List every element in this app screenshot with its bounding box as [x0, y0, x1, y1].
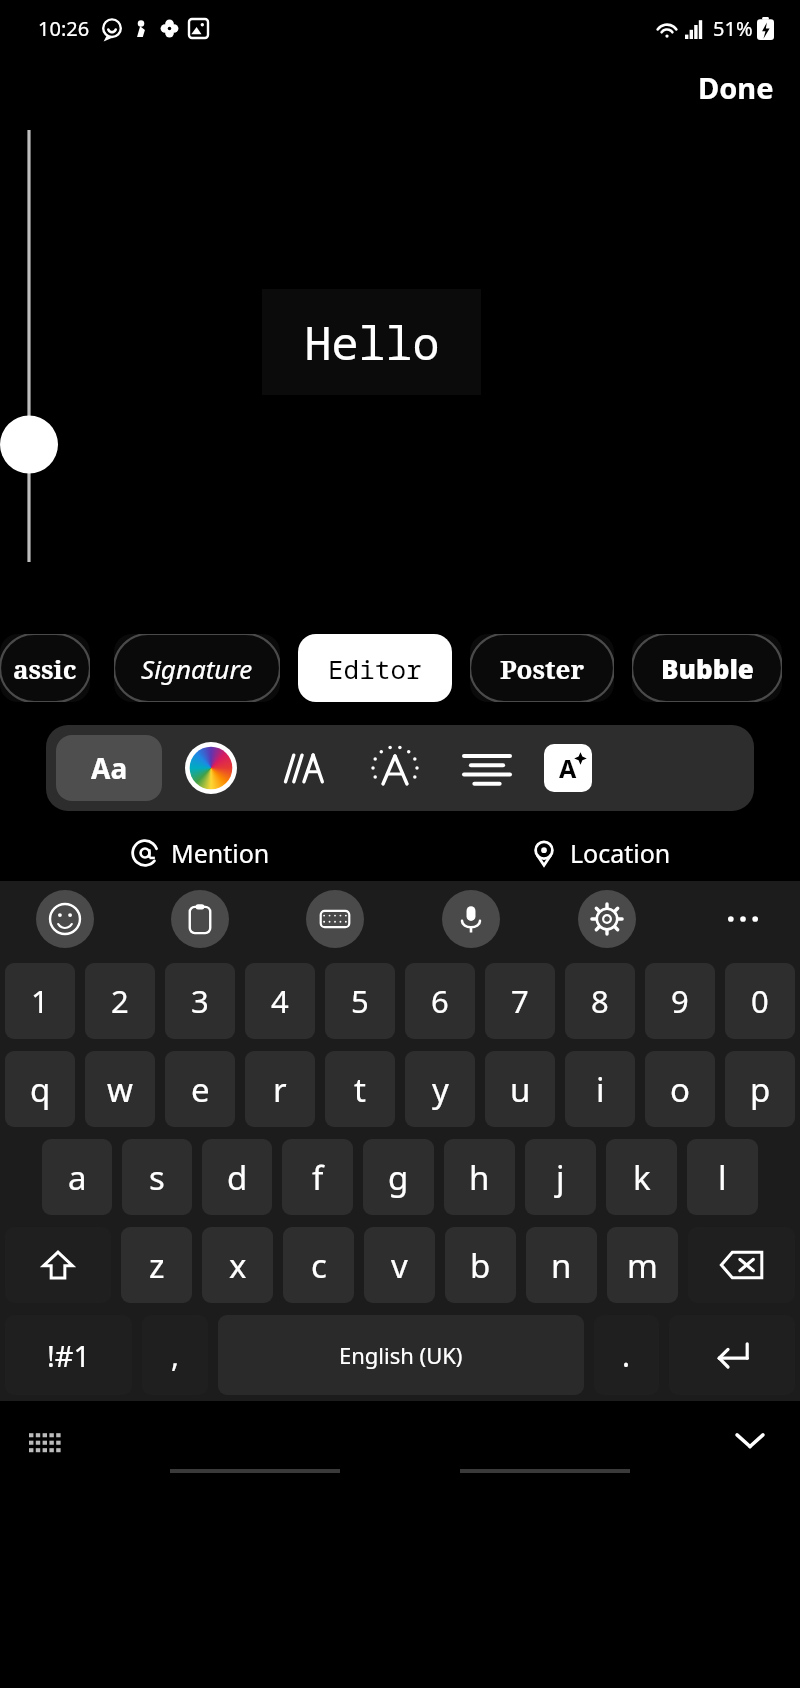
button[interactable]: assic [0, 634, 90, 702]
button[interactable]: z [121, 1227, 192, 1303]
button[interactable]: English (UK) [218, 1315, 584, 1395]
button[interactable]: v [364, 1227, 435, 1303]
button[interactable]: Mention [0, 825, 400, 881]
button[interactable]: a [42, 1139, 112, 1215]
button[interactable]: x [202, 1227, 273, 1303]
button[interactable]: Location [400, 825, 800, 881]
button[interactable]: 5 [325, 963, 395, 1039]
staticText: 10:26 [38, 15, 90, 42]
button[interactable]: , [142, 1315, 208, 1395]
staticText: A [559, 751, 577, 785]
staticText: , [171, 1335, 180, 1376]
button[interactable]: Text highlight [544, 744, 592, 792]
button[interactable]: More options [714, 890, 772, 948]
button[interactable]: Bubble [632, 634, 782, 702]
staticText: 9 [671, 980, 689, 1022]
staticText: o [670, 1067, 690, 1112]
staticText: g [388, 1155, 409, 1200]
button[interactable]: Voice input [442, 890, 500, 948]
button[interactable]: Backspace [688, 1227, 795, 1303]
button[interactable]: f [282, 1139, 353, 1215]
button[interactable]: u [485, 1051, 555, 1127]
staticText: f [312, 1155, 324, 1200]
staticText: 6 [431, 980, 449, 1022]
button[interactable]: Editor [298, 634, 452, 702]
staticText: s [149, 1155, 165, 1200]
button[interactable]: Shift [5, 1227, 111, 1303]
button[interactable]: i [565, 1051, 635, 1127]
staticText: Poster [500, 651, 585, 686]
staticText: 1 [31, 980, 49, 1022]
button[interactable]: Keyboard layout [22, 1416, 70, 1464]
staticText: k [633, 1155, 651, 1200]
button[interactable]: Enter [669, 1315, 795, 1395]
button[interactable]: Emoji [36, 890, 94, 948]
button[interactable]: k [606, 1139, 677, 1215]
button[interactable]: 2 [85, 963, 155, 1039]
staticText: w [107, 1067, 133, 1112]
button[interactable]: 4 [245, 963, 315, 1039]
button[interactable]: Hello [262, 289, 481, 395]
button[interactable]: . [594, 1315, 659, 1395]
staticText: v [391, 1243, 408, 1288]
button[interactable]: h [444, 1139, 515, 1215]
staticText: 3 [191, 980, 209, 1022]
staticText: 5 [351, 980, 369, 1022]
staticText: 2 [111, 980, 129, 1022]
button[interactable]: o [645, 1051, 715, 1127]
staticText: Aa [91, 749, 128, 787]
button[interactable]: Keyboard modes [306, 890, 364, 948]
button[interactable]: Effects [368, 741, 422, 795]
button[interactable]: s [122, 1139, 192, 1215]
button[interactable]: Font style [276, 741, 330, 795]
staticText: b [470, 1243, 491, 1288]
staticText: 8 [591, 980, 609, 1022]
button[interactable]: Text size slider [14, 130, 44, 562]
button[interactable]: Colour [184, 741, 238, 795]
button[interactable]: r [245, 1051, 315, 1127]
button[interactable]: p [725, 1051, 795, 1127]
button[interactable]: 7 [485, 963, 555, 1039]
button[interactable]: j [525, 1139, 596, 1215]
staticText: c [311, 1243, 327, 1288]
button[interactable]: 6 [405, 963, 475, 1039]
button[interactable]: b [445, 1227, 516, 1303]
button[interactable]: l [687, 1139, 758, 1215]
button[interactable]: Clipboard [171, 890, 229, 948]
button[interactable]: 9 [645, 963, 715, 1039]
staticText: d [227, 1155, 248, 1200]
button[interactable]: c [283, 1227, 354, 1303]
button[interactable]: !#1 [5, 1315, 132, 1395]
button[interactable]: Hide keyboard [724, 1414, 776, 1466]
button[interactable]: Signature [114, 634, 280, 702]
button[interactable]: Done [698, 56, 800, 107]
button[interactable]: g [363, 1139, 434, 1215]
button[interactable]: m [607, 1227, 678, 1303]
button[interactable]: y [405, 1051, 475, 1127]
staticText: Editor [328, 651, 422, 686]
button[interactable]: n [526, 1227, 597, 1303]
staticText: z [149, 1243, 165, 1288]
staticText: l [718, 1155, 727, 1200]
staticText: a [68, 1155, 87, 1200]
staticText: . [622, 1335, 631, 1376]
button[interactable]: w [85, 1051, 155, 1127]
button[interactable]: Alignment [460, 741, 514, 795]
staticText: 51% [713, 15, 753, 42]
staticText: x [229, 1243, 247, 1288]
button[interactable]: Aa [56, 735, 162, 801]
button[interactable]: Poster [470, 634, 614, 702]
staticText: r [273, 1067, 287, 1112]
button[interactable]: 3 [165, 963, 235, 1039]
staticText: h [469, 1155, 490, 1200]
button[interactable]: t [325, 1051, 395, 1127]
button[interactable]: 8 [565, 963, 635, 1039]
staticText: 0 [751, 980, 769, 1022]
button[interactable]: e [165, 1051, 235, 1127]
button[interactable]: d [202, 1139, 272, 1215]
button[interactable]: Settings [578, 890, 636, 948]
button[interactable]: 0 [725, 963, 795, 1039]
staticText: assic [13, 651, 77, 686]
button[interactable]: q [5, 1051, 75, 1127]
button[interactable]: 1 [5, 963, 75, 1039]
